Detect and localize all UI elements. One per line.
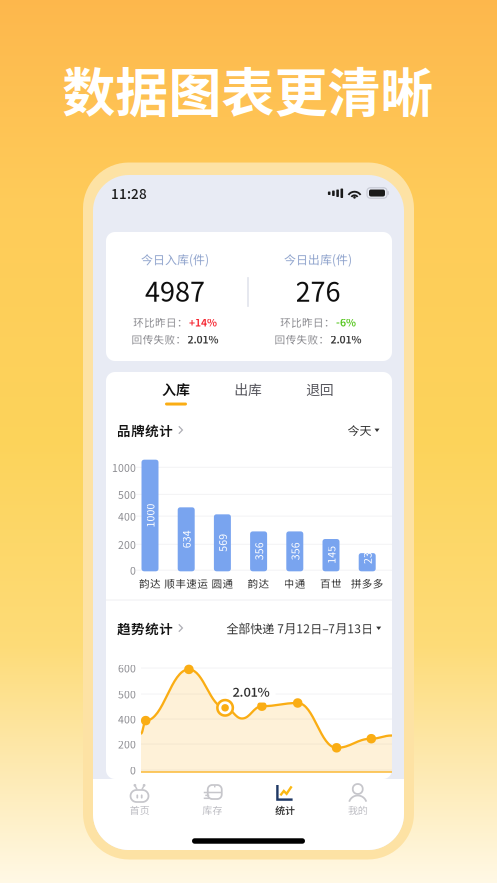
staticText: 环比昨日： (133, 314, 188, 330)
staticText: 200 (118, 736, 136, 752)
staticText: 0 (130, 762, 136, 778)
staticText: 我的 (348, 803, 368, 817)
staticText: 634 (177, 532, 195, 547)
button[interactable]: 我的 (322, 779, 394, 827)
staticText: 356 (286, 544, 304, 559)
staticText: 入库 (162, 379, 190, 399)
staticText: 400 (118, 508, 136, 524)
staticText: 356 (250, 544, 268, 559)
staticText: 回传失败： (274, 331, 329, 347)
button[interactable]: 全部快递 7月12日–7月13日 (226, 619, 381, 637)
staticText: 600 (118, 660, 136, 676)
staticText: 500 (118, 487, 136, 502)
staticText: 韵达 (139, 575, 161, 591)
staticText: 今天 (347, 421, 371, 439)
staticText: 23 (361, 550, 373, 566)
staticText: 1000 (138, 508, 162, 523)
staticText: 569 (213, 535, 231, 550)
staticText: 中通 (284, 575, 306, 591)
staticText: 今日入库(件) (141, 250, 209, 268)
staticText: 百世 (320, 575, 342, 591)
staticText: 0 (130, 563, 136, 578)
staticText: 退回 (306, 379, 334, 399)
staticText: 500 (118, 686, 136, 702)
button[interactable]: 出库 (218, 372, 278, 414)
staticText: 1000 (112, 460, 136, 475)
staticText: 库存 (202, 803, 222, 817)
staticText: 11:28 (111, 183, 147, 203)
staticText: 品牌统计 (117, 420, 173, 440)
staticText: 出库 (234, 379, 262, 399)
staticText: 顺丰速运 (164, 575, 208, 591)
staticText: 2.01% (187, 331, 218, 347)
staticText: 2.01% (232, 682, 269, 700)
staticText: +14% (189, 314, 217, 330)
staticText: 数据图表更清晰 (62, 51, 433, 127)
button[interactable]: 统计 (249, 779, 321, 827)
staticText: 今日出库(件) (284, 250, 352, 268)
staticText: 4987 (145, 270, 205, 310)
button[interactable]: 首页 (103, 779, 175, 827)
staticText: 拼多多 (351, 575, 384, 591)
button[interactable]: 今天 (347, 421, 379, 439)
staticText: 276 (295, 270, 340, 310)
staticText: 圆通 (211, 575, 233, 591)
button[interactable]: 库存 (176, 779, 248, 827)
staticText: 400 (118, 711, 136, 727)
staticText: -6% (336, 314, 356, 330)
staticText: 回传失败： (131, 331, 186, 347)
staticText: 韵达 (248, 575, 270, 591)
staticText: 统计 (275, 803, 295, 817)
staticText: 200 (118, 537, 136, 552)
staticText: 趋势统计 (117, 618, 173, 638)
button[interactable]: 退回 (290, 372, 350, 414)
staticText: 首页 (129, 803, 149, 817)
staticText: 2.01% (330, 331, 361, 347)
button[interactable]: 入库 (146, 372, 206, 414)
staticText: 145 (322, 547, 340, 562)
staticText: 环比昨日： (280, 314, 335, 330)
staticText: 全部快递 7月12日–7月13日 (226, 619, 373, 637)
